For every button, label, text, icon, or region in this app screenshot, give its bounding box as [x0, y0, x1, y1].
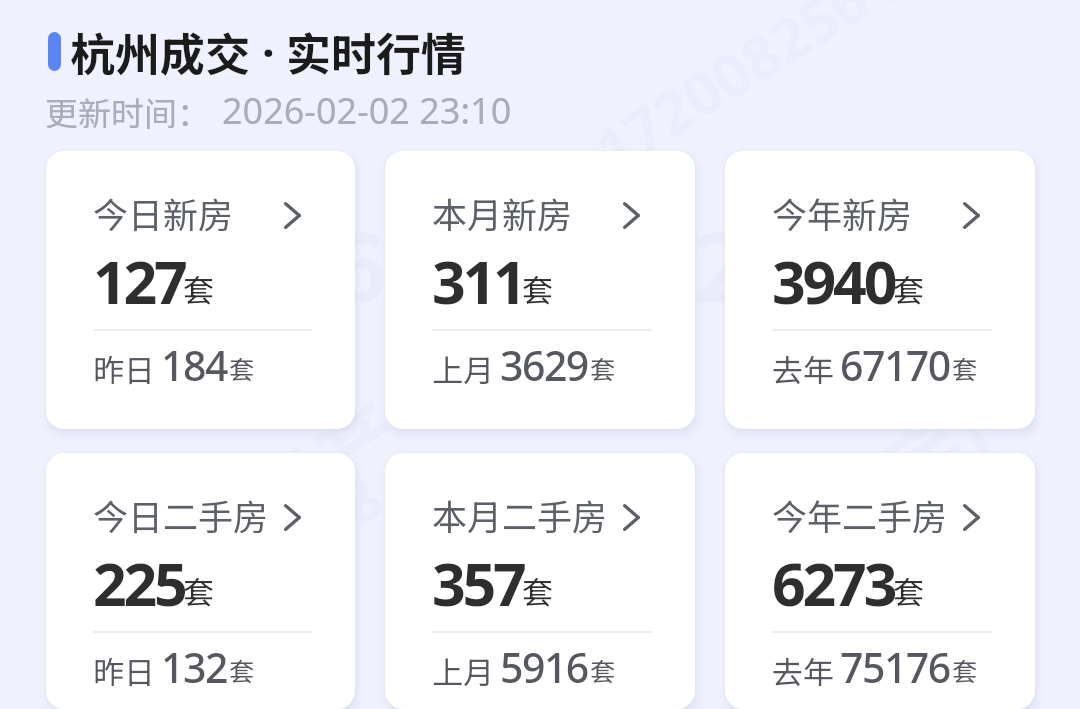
staticText: 套: [183, 266, 214, 311]
staticText: 2026-02-02 23:10: [170, 195, 941, 328]
staticText: 上月: [432, 648, 494, 693]
staticText: 套: [183, 568, 214, 613]
staticText: 17200825618: [578, 0, 942, 191]
other: 本月新房 详情: [623, 202, 640, 229]
staticText: 杭州成交: [70, 19, 251, 84]
staticText: 套: [229, 652, 255, 688]
staticText: 132: [161, 639, 227, 695]
staticText: 今日新房: [93, 187, 234, 238]
other: 今年二手房 详情: [963, 504, 980, 531]
staticText: 套: [952, 652, 978, 688]
button[interactable]: 今日二手房: [46, 453, 355, 709]
staticText: 今年新房: [772, 187, 913, 238]
staticText: 套: [952, 350, 978, 386]
staticText: 杭州房产: [67, 367, 425, 655]
staticText: 上月: [432, 346, 494, 391]
other: 今年新房 详情: [963, 202, 980, 229]
staticText: 184: [161, 337, 227, 393]
staticText: 17200825618: [33, 456, 397, 709]
staticText: 67170: [840, 337, 950, 393]
staticText: 今年二手房: [772, 489, 948, 540]
other: 今日新房 详情: [284, 202, 301, 229]
staticText: 去年: [772, 346, 834, 391]
staticText: 套: [590, 350, 616, 386]
staticText: 套: [229, 350, 255, 386]
staticText: 311: [432, 241, 524, 321]
staticText: 357: [432, 543, 524, 623]
staticText: 套: [893, 568, 924, 613]
staticText: 本月新房: [432, 187, 573, 238]
staticText: 3940: [772, 241, 895, 321]
button[interactable]: 本月二手房: [385, 453, 695, 709]
staticText: 套: [893, 266, 924, 311]
staticText: 套: [522, 266, 553, 311]
staticText: 实时行情: [286, 19, 467, 84]
staticText: ·: [262, 21, 275, 82]
staticText: 1712: [368, 453, 529, 596]
staticText: 5916: [500, 639, 588, 695]
staticText: 225: [93, 543, 185, 623]
staticText: 75176: [840, 639, 950, 695]
button[interactable]: 本月新房: [385, 151, 695, 429]
staticText: 昨日: [93, 648, 155, 693]
staticText: 套: [590, 652, 616, 688]
button[interactable]: 今年新房: [725, 151, 1035, 429]
staticText: 更新时间：: [45, 88, 210, 136]
staticText: 127: [93, 241, 185, 321]
staticText: 今日二手房: [93, 489, 269, 540]
staticText: 昨日: [93, 346, 155, 391]
staticText: 套: [522, 568, 553, 613]
other: 今日二手房 详情: [284, 504, 301, 531]
staticText: 3629: [500, 337, 588, 393]
staticText: 2026-02-02 23:10: [222, 86, 512, 135]
staticText: 去年: [772, 648, 834, 693]
button[interactable]: 今年二手房: [725, 453, 1035, 709]
button[interactable]: 今日新房: [46, 151, 355, 429]
staticText: 杭州房产: [707, 337, 1065, 625]
staticText: 本月二手房: [432, 489, 608, 540]
other: 本月二手房 详情: [623, 504, 640, 531]
staticText: 6273: [772, 543, 895, 623]
